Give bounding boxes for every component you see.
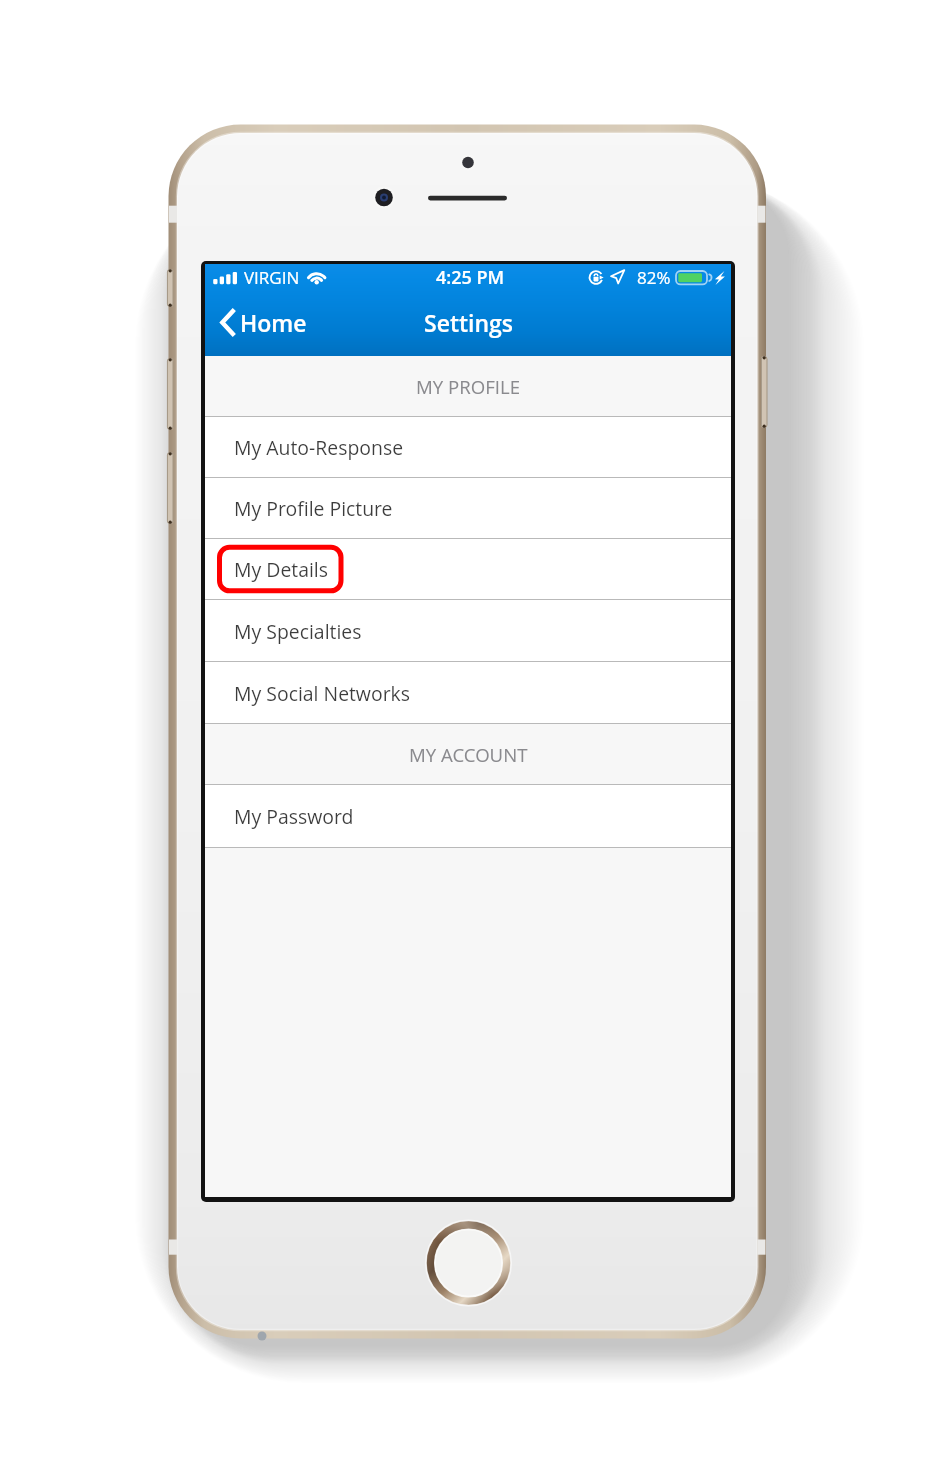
button[interactable]: Home [220,292,307,356]
staticText: 82% [637,266,671,289]
staticText: My Social Networks [234,680,411,706]
staticText: My Auto-Response [234,434,404,460]
button[interactable]: My Password [205,785,731,847]
staticText: Home [240,307,307,338]
staticText: My Profile Picture [234,495,393,521]
button[interactable]: My Social Networks [205,662,731,723]
staticText: My Password [234,803,354,829]
button[interactable]: My Auto-Response [205,417,731,477]
staticText: Settings [424,307,513,338]
staticText: My Specialties [234,618,362,644]
staticText: VIRGIN [244,266,300,289]
button[interactable]: My Specialties [205,600,731,661]
staticText: My Details [234,556,329,582]
staticText: MY PROFILE [416,374,520,399]
button[interactable]: My Details [205,539,731,599]
staticText: 4:25 PM [436,265,505,290]
staticText: MY ACCOUNT [409,742,528,767]
button[interactable]: My Profile Picture [205,478,731,538]
